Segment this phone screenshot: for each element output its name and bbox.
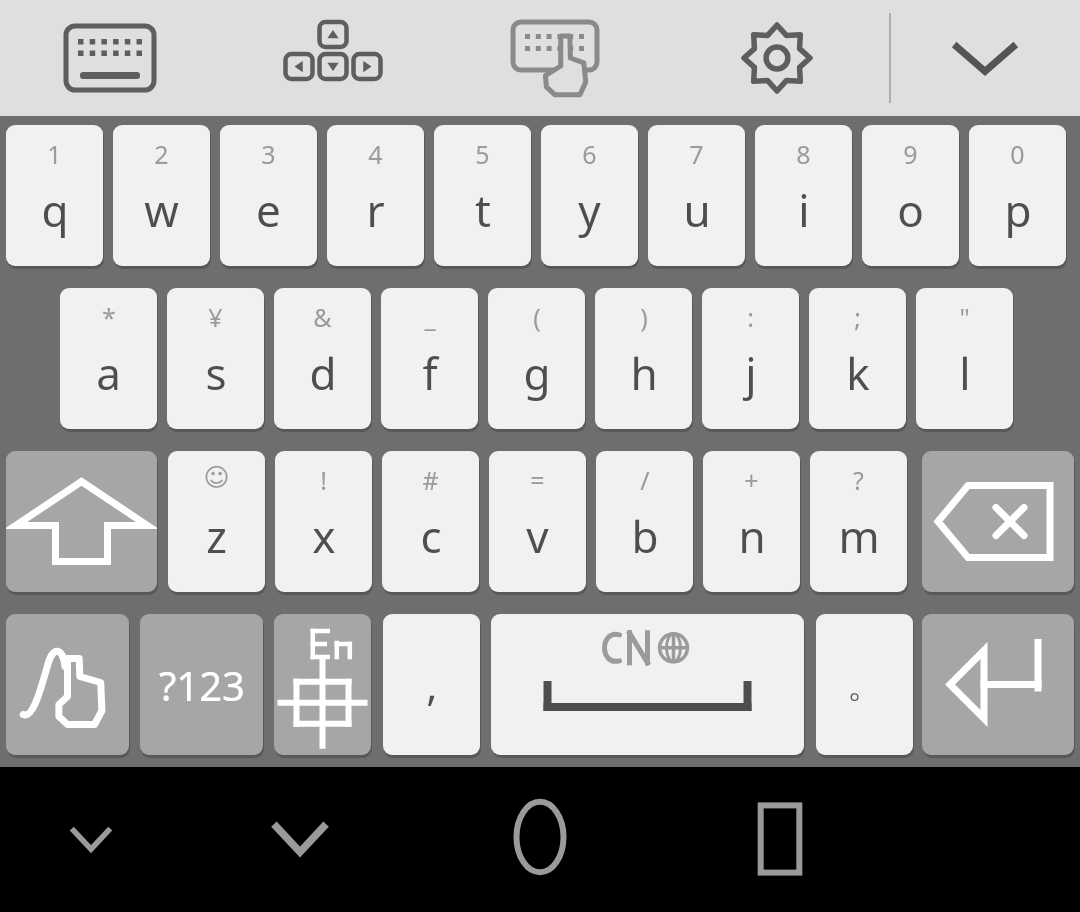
staticText: , xyxy=(426,656,438,713)
button[interactable]: ) xyxy=(595,288,692,429)
staticText: f xyxy=(422,343,438,403)
button[interactable]: Keyboard layout xyxy=(62,20,158,96)
button[interactable]: Back xyxy=(258,795,342,879)
button[interactable]: 0 xyxy=(969,125,1066,266)
staticText: & xyxy=(313,300,332,334)
button[interactable]: & xyxy=(274,288,371,429)
button[interactable]: 9 xyxy=(862,125,959,266)
button[interactable]: Hide keyboard xyxy=(60,807,122,869)
staticText: # xyxy=(422,463,439,497)
button[interactable]: ; xyxy=(809,288,906,429)
staticText: 2 xyxy=(154,137,169,171)
button[interactable]: 7 xyxy=(648,125,745,266)
button[interactable]: ( xyxy=(488,288,585,429)
staticText: a xyxy=(96,343,121,403)
staticText: s xyxy=(205,343,227,403)
button[interactable]: ☺ xyxy=(168,451,265,592)
staticText: j xyxy=(745,343,757,403)
staticText: b xyxy=(631,506,659,566)
staticText: k xyxy=(846,343,870,403)
button[interactable]: Settings xyxy=(737,20,817,96)
staticText: p xyxy=(1004,180,1032,240)
staticText: 0 xyxy=(1010,137,1025,171)
staticText: n xyxy=(738,506,766,566)
button[interactable]: Switch language xyxy=(274,614,371,755)
staticText: 7 xyxy=(689,137,704,171)
staticText: / xyxy=(640,463,650,497)
button[interactable]: Hide keyboard xyxy=(941,30,1029,86)
staticText: h xyxy=(630,343,658,403)
button[interactable]: : xyxy=(702,288,799,429)
staticText: e xyxy=(256,180,281,240)
staticText: t xyxy=(475,180,491,240)
staticText: ! xyxy=(320,463,327,497)
button[interactable]: + xyxy=(703,451,800,592)
button[interactable]: Shift xyxy=(6,451,157,592)
button[interactable]: Home xyxy=(498,795,582,879)
staticText: _ xyxy=(424,300,436,334)
staticText: o xyxy=(897,180,924,240)
staticText: x xyxy=(312,506,336,566)
button[interactable]: Gesture input xyxy=(6,614,129,755)
staticText: " xyxy=(959,300,970,334)
staticText: 。 xyxy=(847,662,883,707)
staticText: ) xyxy=(640,300,648,334)
staticText: 1 xyxy=(47,137,62,171)
staticText: u xyxy=(683,180,711,240)
staticText: + xyxy=(744,463,759,497)
staticText: g xyxy=(523,343,551,403)
staticText: * xyxy=(102,300,116,334)
staticText: d xyxy=(309,343,337,403)
button[interactable]: 1 xyxy=(6,125,103,266)
button[interactable]: / xyxy=(596,451,693,592)
staticText: 3 xyxy=(261,137,276,171)
button[interactable]: * xyxy=(60,288,157,429)
staticText: = xyxy=(530,463,545,497)
staticText: ☺ xyxy=(203,463,230,492)
staticText: r xyxy=(366,180,385,240)
button[interactable]: , xyxy=(383,614,480,755)
staticText: : xyxy=(747,300,754,334)
button[interactable]: 3 xyxy=(220,125,317,266)
staticText: ¥ xyxy=(208,300,223,334)
button[interactable]: Arrow keys xyxy=(285,16,381,100)
staticText: 5 xyxy=(475,137,490,171)
staticText: 8 xyxy=(796,137,811,171)
staticText: ; xyxy=(854,300,861,334)
button[interactable]: 6 xyxy=(541,125,638,266)
button[interactable]: ¥ xyxy=(167,288,264,429)
staticText: y xyxy=(578,180,601,240)
button[interactable]: " xyxy=(916,288,1013,429)
staticText: q xyxy=(41,180,69,240)
staticText: 6 xyxy=(582,137,597,171)
staticText: 4 xyxy=(368,137,383,171)
button[interactable]: Space xyxy=(491,614,804,755)
button[interactable]: Recent apps xyxy=(738,797,822,881)
button[interactable]: = xyxy=(489,451,586,592)
staticText: z xyxy=(206,506,227,566)
button[interactable]: Enter xyxy=(922,614,1074,755)
staticText: v xyxy=(526,506,549,566)
staticText: 9 xyxy=(903,137,918,171)
button[interactable]: 4 xyxy=(327,125,424,266)
staticText: ( xyxy=(533,300,541,334)
button[interactable]: 。 xyxy=(816,614,913,755)
staticText: ? xyxy=(853,463,864,497)
button[interactable]: ? xyxy=(810,451,907,592)
staticText: ?123 xyxy=(159,658,245,712)
button[interactable]: Symbols xyxy=(140,614,263,755)
staticText: c xyxy=(420,506,442,566)
button[interactable]: ! xyxy=(275,451,372,592)
staticText: i xyxy=(798,180,810,240)
button[interactable]: Backspace xyxy=(922,451,1074,592)
button[interactable]: Handwriting input xyxy=(507,18,603,98)
button[interactable]: _ xyxy=(381,288,478,429)
staticText: l xyxy=(959,343,971,403)
button[interactable]: 2 xyxy=(113,125,210,266)
staticText: m xyxy=(838,506,880,566)
button[interactable]: # xyxy=(382,451,479,592)
staticText: w xyxy=(144,180,179,240)
button[interactable]: 8 xyxy=(755,125,852,266)
button[interactable]: 5 xyxy=(434,125,531,266)
